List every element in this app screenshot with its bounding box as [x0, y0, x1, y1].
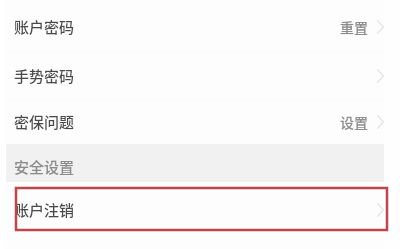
- staticText: 账户注销: [14, 199, 75, 221]
- button[interactable]: 手势密码: [6, 52, 384, 99]
- other: Open 账户注销: [377, 203, 384, 217]
- staticText: 安全设置: [14, 156, 75, 178]
- staticText: 账户密码: [14, 16, 75, 38]
- other: Open 密保问题: [377, 115, 384, 129]
- button[interactable]: 密保问题: [6, 100, 384, 144]
- other: Open 账户密码: [377, 20, 384, 34]
- staticText: 手势密码: [14, 65, 75, 87]
- button[interactable]: 账户注销: [6, 182, 384, 237]
- other: Open 手势密码: [377, 69, 384, 83]
- staticText: 重置: [340, 17, 368, 37]
- staticText: 设置: [340, 112, 368, 132]
- button[interactable]: 账户密码: [6, 3, 384, 51]
- staticText: 密保问题: [14, 111, 75, 133]
